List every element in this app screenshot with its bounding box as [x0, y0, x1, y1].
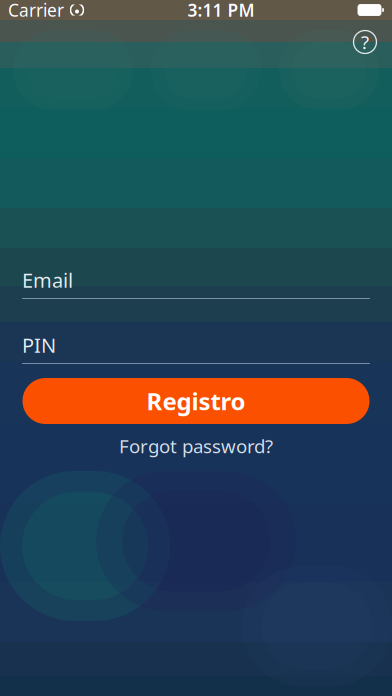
staticText: PIN	[22, 332, 56, 358]
staticText: Forgot password?	[119, 434, 273, 458]
button[interactable]: Registro	[22, 378, 369, 424]
button[interactable]: Forgot password?	[22, 436, 369, 456]
button[interactable]: Email	[22, 270, 370, 299]
staticText: Carrier	[8, 0, 64, 21]
button[interactable]: PIN	[22, 335, 370, 364]
staticText: Email	[22, 267, 73, 293]
staticText: ?	[361, 30, 369, 54]
staticText: Registro	[146, 385, 245, 417]
staticText: 3:11 PM	[187, 0, 254, 21]
button[interactable]: Help	[348, 25, 382, 59]
